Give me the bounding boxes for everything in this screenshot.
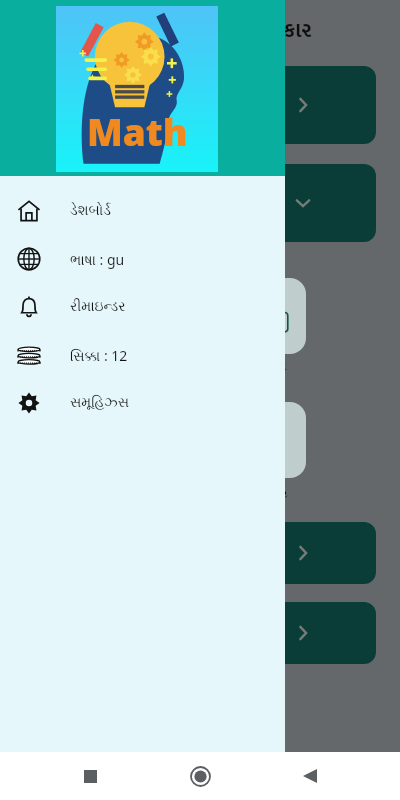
button[interactable]: Dashboard [0, 187, 285, 235]
button[interactable]: Reminder [0, 283, 285, 331]
other: Dashboard [14, 196, 44, 226]
staticText: સમૂહિઝ્સ [70, 396, 130, 410]
staticText: કાર [283, 13, 312, 48]
other: Coins [14, 340, 44, 370]
button[interactable]: Home [145, 752, 255, 800]
button[interactable]: Coins [0, 331, 285, 379]
staticText: હંઢસુહ [249, 484, 288, 498]
button[interactable]: Open [230, 522, 376, 584]
button[interactable]: Open [230, 66, 376, 144]
button[interactable]: Settings [0, 379, 285, 427]
button[interactable]: હંઢસુહ [230, 402, 306, 478]
staticText: ભાષા : gu [70, 250, 125, 269]
staticText: Math [87, 106, 188, 156]
other: Language [14, 244, 44, 274]
staticText: રીમાઇન્ડર [70, 300, 126, 314]
staticText: ડેશબોર્ડ [70, 204, 111, 218]
button[interactable]: Expand [230, 164, 376, 242]
button[interactable]: Open [230, 602, 376, 664]
staticText: સિક્કા : 12 [70, 346, 128, 365]
button[interactable]: Recent apps [35, 752, 145, 800]
staticText: ઇનપુટ [250, 360, 287, 374]
other: Reminder [14, 292, 44, 322]
button[interactable]: ઇનપુટ [230, 278, 306, 354]
button[interactable]: Language [0, 235, 285, 283]
button[interactable]: Back [255, 752, 365, 800]
other: Settings [14, 388, 44, 418]
